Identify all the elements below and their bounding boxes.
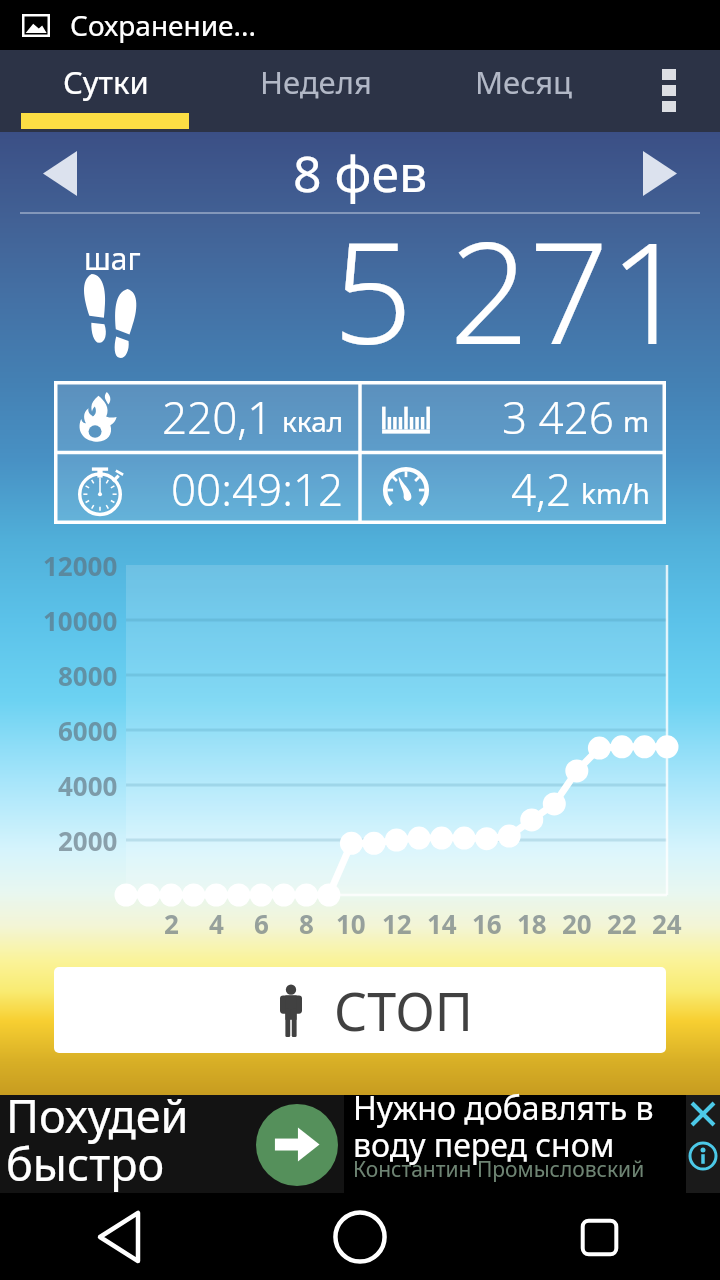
staticText: Похудей <box>6 1085 189 1146</box>
staticText: 16 <box>472 906 502 941</box>
staticText: 00:49:12 <box>171 459 344 519</box>
staticText: 2000 <box>58 823 118 858</box>
button[interactable]: СТОП <box>54 967 666 1053</box>
button[interactable]: Home <box>240 1193 480 1280</box>
button[interactable]: More options <box>618 50 720 132</box>
staticText: ккал <box>282 402 344 440</box>
button[interactable]: Неделя <box>208 50 423 114</box>
staticText: воду перед сном <box>353 1123 615 1167</box>
staticText: 14 <box>427 906 457 941</box>
button[interactable]: Месяц <box>420 50 628 114</box>
button[interactable]: Previous day <box>0 132 120 214</box>
staticText: быстро <box>6 1133 165 1194</box>
button[interactable]: Back <box>0 1193 240 1280</box>
button[interactable]: Recent apps <box>480 1193 720 1280</box>
staticText: 8000 <box>58 658 118 693</box>
button[interactable]: Close ad <box>688 1099 718 1129</box>
staticText: 8 <box>299 906 314 941</box>
button[interactable]: Сутки <box>0 50 211 114</box>
staticText: 6 <box>254 906 269 941</box>
staticText: 10000 <box>43 603 118 638</box>
staticText: шаг <box>84 238 141 279</box>
staticText: Нужно добавлять в <box>353 1086 654 1130</box>
button[interactable]: 3 426 <box>360 381 666 453</box>
staticText: km/h <box>581 474 650 512</box>
button[interactable]: 00:49:12 <box>54 453 360 525</box>
staticText: 5 271 <box>332 194 689 385</box>
staticText: 4 <box>209 906 224 941</box>
staticText: m <box>623 402 650 440</box>
staticText: 6000 <box>58 713 118 748</box>
staticText: 2 <box>164 906 179 941</box>
staticText: Неделя <box>260 61 372 103</box>
staticText: 18 <box>517 906 547 941</box>
button[interactable]: 220,1 <box>54 381 360 453</box>
staticText: 8 фев <box>293 139 428 207</box>
staticText: 10 <box>336 906 366 941</box>
staticText: СТОП <box>334 975 473 1046</box>
staticText: 12 <box>382 906 412 941</box>
staticText: 220,1 <box>162 387 273 447</box>
staticText: 3 426 <box>502 387 614 447</box>
button[interactable]: 4,2 <box>360 453 666 525</box>
staticText: 24 <box>652 906 682 941</box>
staticText: Константин Промысловский <box>353 1155 645 1184</box>
staticText: Сохранение... <box>70 6 257 44</box>
staticText: 22 <box>607 906 637 941</box>
button[interactable]: Next day <box>600 132 720 214</box>
staticText: 4000 <box>58 768 118 803</box>
staticText: 20 <box>562 906 592 941</box>
button[interactable]: Ad info <box>688 1141 718 1171</box>
button[interactable]: Похудей <box>0 1095 720 1193</box>
staticText: 12000 <box>43 548 118 583</box>
staticText: Сутки <box>63 61 149 103</box>
staticText: 4,2 <box>511 459 572 519</box>
staticText: Месяц <box>475 61 573 103</box>
